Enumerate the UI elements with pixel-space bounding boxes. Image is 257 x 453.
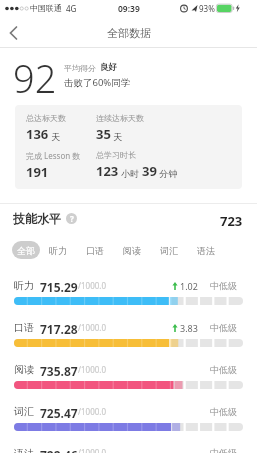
staticText: 连续达标天数 [96,113,144,123]
staticText: 击败了60%同学 [64,76,131,89]
staticText: 中国联通 [30,3,62,13]
button[interactable] [0,18,28,47]
staticText: 天 [49,130,61,142]
button[interactable]: 词汇 [14,405,243,447]
button[interactable]: 口语 [14,321,243,363]
button[interactable]: 全部 [12,241,40,259]
staticText: 平均得分 [64,63,96,73]
staticText: 723 [220,212,243,226]
staticText: 全部 [17,245,35,256]
staticText: 阅读 [14,363,34,376]
staticText: 完成 Lesson 数 [26,150,81,161]
staticText: 技能水平 [13,211,61,225]
staticText: 92 [13,52,57,104]
staticText: 口语 [86,245,104,256]
staticText: 小时 [119,167,142,179]
staticText: 中低级 [210,364,237,375]
staticText: 35 [96,125,111,143]
button[interactable]: 阅读 [123,245,141,256]
staticText: 722.46 [40,447,78,453]
staticText: /1000.0 [78,447,106,453]
button[interactable]: ? [66,213,77,224]
staticText: 口语 [14,321,34,334]
staticText: 717.28 [40,321,78,334]
button[interactable]: 语法 [14,447,243,453]
staticText: 39 [142,162,157,180]
button[interactable]: 听力 [49,245,67,256]
staticText: 715.29 [40,279,78,292]
staticText: 735.87 [40,363,78,376]
staticText: 4G [66,3,77,14]
staticText: 全部数据 [107,26,151,40]
staticText: 词汇 [14,405,34,418]
staticText: 中低级 [210,322,237,333]
staticText: 阅读 [123,245,141,256]
staticText: 09:39 [118,3,140,15]
button[interactable]: 词汇 [160,245,178,256]
staticText: 听力 [49,245,67,256]
staticText: 语法 [14,447,34,453]
staticText: 中低级 [210,406,237,417]
staticText: 3.83 [180,322,198,334]
staticText: 听力 [14,279,34,292]
button[interactable]: 语法 [197,245,215,256]
staticText: 分钟 [157,167,178,179]
staticText: 良好 [100,62,117,73]
staticText: 725.47 [40,405,78,418]
staticText: 123 [96,162,119,180]
button[interactable]: 阅读 [14,363,243,405]
staticText: /1000.0 [78,406,106,417]
staticText: /1000.0 [78,322,106,333]
staticText: 191 [26,163,49,181]
staticText: 天 [111,130,123,142]
staticText: 总达标天数 [26,113,66,123]
staticText: 中低级 [210,447,237,453]
staticText: /1000.0 [78,364,106,375]
staticText: 语法 [197,245,215,256]
button[interactable]: 听力 [14,279,243,321]
staticText: /1000.0 [78,280,106,291]
staticText: 93% [199,3,215,14]
staticText: 中低级 [210,280,237,291]
staticText: 总学习时长 [96,150,136,160]
staticText: 词汇 [160,245,178,256]
staticText: 1.02 [180,280,198,292]
button[interactable]: 口语 [86,245,104,256]
staticText: 136 [26,125,49,143]
staticText: ? [70,213,74,224]
